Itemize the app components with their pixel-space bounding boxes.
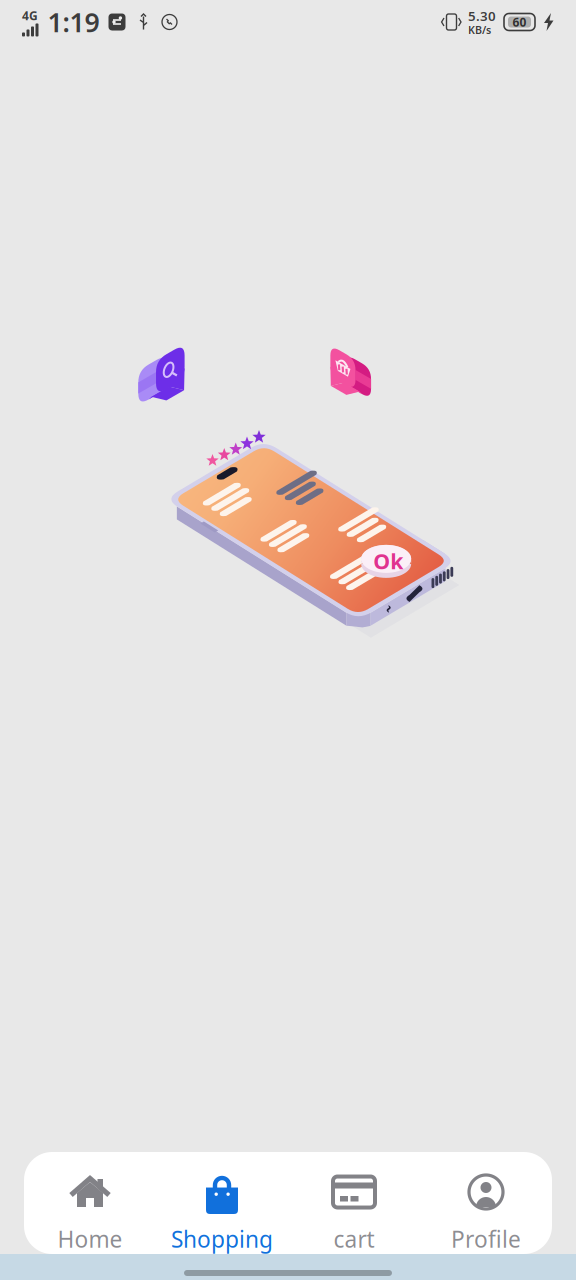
- staticText: 60: [512, 14, 526, 30]
- staticText: cart: [333, 1224, 374, 1254]
- button[interactable]: Home: [24, 1152, 156, 1254]
- staticText: Ok: [373, 547, 403, 575]
- staticText: KB/s: [468, 23, 491, 37]
- staticText: Home: [57, 1224, 122, 1254]
- button[interactable]: Profile: [420, 1152, 552, 1254]
- staticText: 5.30: [468, 7, 496, 25]
- staticText: 4G: [22, 7, 38, 23]
- staticText: Profile: [451, 1224, 521, 1254]
- staticText: Shopping: [171, 1224, 273, 1254]
- staticText: 1:19: [47, 4, 99, 40]
- button[interactable]: cart: [288, 1152, 420, 1254]
- button[interactable]: Shopping: [156, 1152, 288, 1254]
